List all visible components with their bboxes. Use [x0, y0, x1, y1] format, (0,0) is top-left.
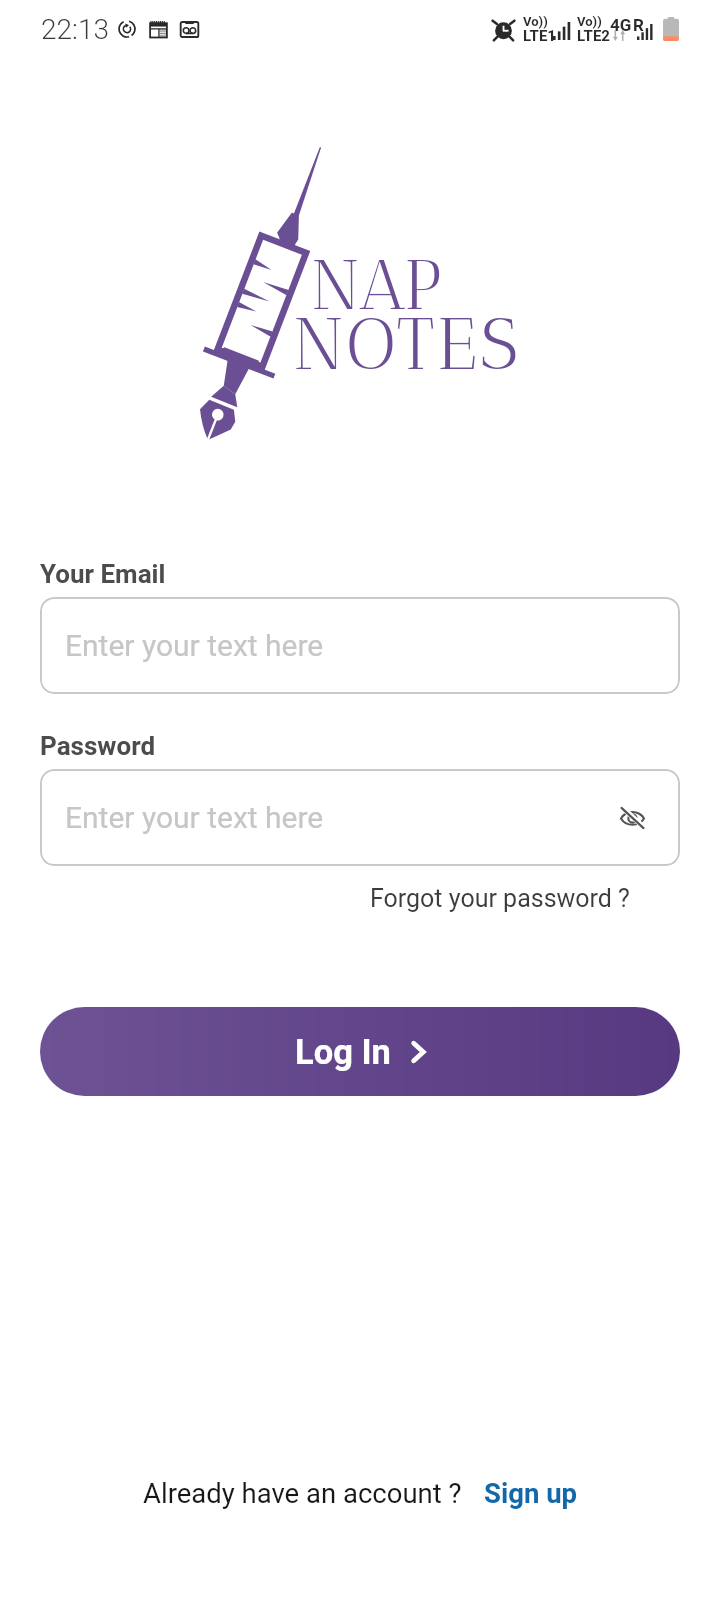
staticText: Already have an account ? — [143, 1477, 462, 1509]
staticText: Your Email — [40, 559, 166, 589]
button[interactable]: Show password — [610, 796, 654, 840]
staticText: Enter your text here — [65, 800, 324, 835]
staticText: Enter your text here — [65, 628, 324, 663]
staticText: R — [633, 15, 644, 35]
button[interactable]: Enter your text here — [40, 597, 680, 694]
staticText: 22:13 — [41, 13, 110, 46]
button[interactable]: Enter your text here — [40, 769, 680, 866]
staticText: Sign up — [484, 1477, 578, 1509]
staticText: LTE2 — [577, 27, 610, 45]
staticText: NAP — [311, 243, 442, 326]
button[interactable]: Sign up — [484, 1477, 578, 1509]
staticText: Vo)) — [523, 14, 548, 29]
staticText: 4G — [610, 15, 632, 35]
staticText: Forgot your password ? — [370, 884, 630, 913]
staticText: Vo)) — [577, 14, 602, 29]
staticText: NOTES — [293, 300, 522, 387]
staticText: Password — [40, 731, 156, 761]
staticText: Log In — [295, 1032, 391, 1072]
button[interactable]: Log In — [40, 1007, 680, 1096]
staticText: LTE1 — [523, 27, 556, 45]
button[interactable]: Forgot your password ? — [370, 884, 630, 913]
